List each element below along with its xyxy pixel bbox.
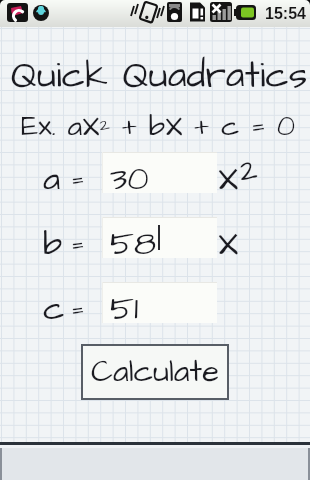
button[interactable]: 30 — [102, 152, 217, 193]
staticText: 58 — [110, 220, 157, 261]
button[interactable]: Calculate — [82, 345, 228, 399]
staticText: = — [71, 225, 85, 263]
button[interactable]: 51 — [102, 282, 217, 323]
staticText: 2 — [240, 149, 258, 192]
staticText: Quick Quadratics — [4, 51, 310, 102]
staticText: Ex. aX² + bX + c = 0 — [3, 106, 310, 146]
staticText: a — [43, 155, 61, 202]
staticText: = — [71, 160, 85, 198]
staticText: 51 — [110, 285, 139, 326]
staticText: = — [71, 290, 85, 328]
staticText: c — [43, 285, 65, 332]
staticText: X — [218, 220, 239, 267]
staticText: 30 — [110, 155, 149, 196]
staticText: 15:54 — [265, 5, 306, 23]
staticText: Calculate — [91, 350, 219, 393]
button[interactable]: 58 — [102, 217, 217, 258]
staticText: b — [43, 220, 63, 267]
staticText: X — [218, 155, 239, 202]
